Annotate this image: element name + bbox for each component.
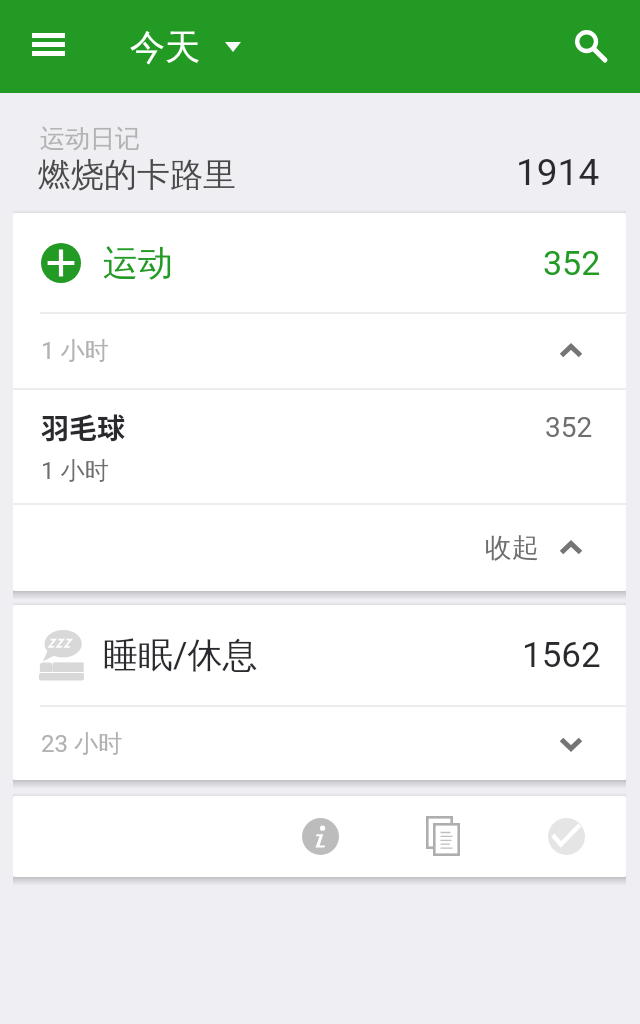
button[interactable]: 运动 xyxy=(13,213,626,312)
staticText: 352 xyxy=(545,411,593,444)
staticText: 23 小时 xyxy=(41,729,122,759)
staticText: 1 小时 xyxy=(41,456,109,486)
staticText: 羽毛球 xyxy=(41,407,126,448)
button[interactable]: Copy xyxy=(407,800,479,872)
staticText: 运动 xyxy=(103,241,173,285)
staticText: 352 xyxy=(543,243,601,283)
staticText: 1 小时 xyxy=(41,336,109,366)
button[interactable]: 收起 xyxy=(13,505,626,591)
button[interactable]: 今天 xyxy=(130,25,241,69)
button[interactable]: Search xyxy=(561,16,623,78)
staticText: 1914 xyxy=(516,151,600,194)
staticText: 1562 xyxy=(522,635,601,676)
button[interactable]: 睡眠/休息 xyxy=(13,605,626,705)
button[interactable]: Info xyxy=(284,800,356,872)
button[interactable]: 23 小时 xyxy=(13,707,626,780)
staticText: 收起 xyxy=(485,531,539,565)
button[interactable]: Done xyxy=(530,800,602,872)
staticText: 睡眠/休息 xyxy=(103,633,258,677)
button[interactable]: 1 小时 xyxy=(13,314,626,388)
staticText: 燃烧的卡路里 xyxy=(38,154,236,196)
staticText: 今天 xyxy=(130,25,200,69)
button[interactable]: 羽毛球 xyxy=(13,390,626,503)
button[interactable]: Menu xyxy=(17,13,80,76)
staticText: 运动日记 xyxy=(40,123,140,154)
